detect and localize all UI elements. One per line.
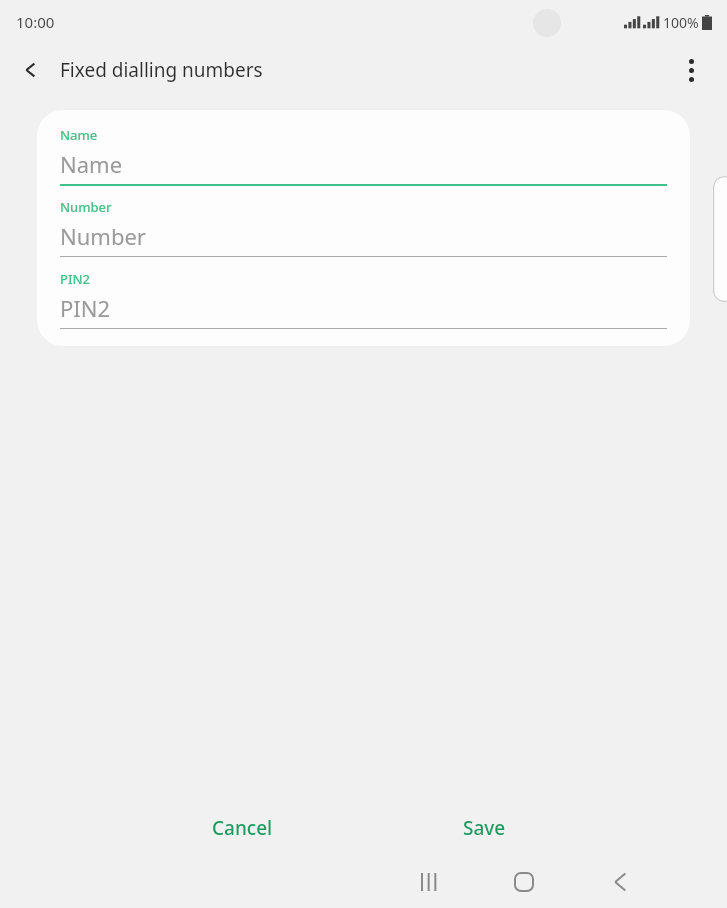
button[interactable]: Back [10, 48, 54, 92]
staticText: PIN2 [60, 270, 91, 288]
button[interactable]: Recent apps [396, 855, 462, 908]
button[interactable]: Number [60, 198, 667, 257]
staticText: 100% [663, 13, 699, 32]
staticText: PIN2 [60, 293, 111, 323]
staticText: Number [60, 198, 112, 216]
button[interactable]: PIN2 [60, 270, 667, 329]
staticText: Cancel [212, 815, 273, 841]
staticText: Name [60, 126, 98, 144]
staticText: Name [60, 149, 123, 179]
button[interactable]: Save [424, 800, 544, 855]
button[interactable]: More options [669, 48, 713, 92]
button[interactable]: Back [587, 855, 653, 908]
button[interactable]: Home [491, 855, 557, 908]
staticText: Save [463, 815, 506, 841]
button[interactable]: Cancel [172, 800, 312, 855]
staticText: 10:00 [16, 12, 55, 32]
button[interactable]: Name [60, 126, 667, 186]
staticText: Fixed dialling numbers [60, 57, 263, 83]
staticText: Number [60, 221, 146, 251]
